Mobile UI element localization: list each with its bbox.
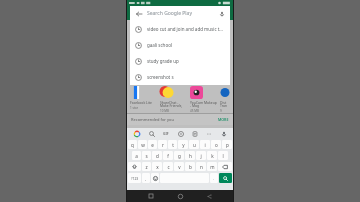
staticText: y [182, 142, 185, 148]
button[interactable]: Search [147, 129, 156, 138]
button[interactable]: ShareChat - Make Friends, [159, 86, 189, 113]
staticText: 1 star [130, 106, 138, 110]
button[interactable]: Shift [128, 162, 141, 171]
button[interactable]: u [189, 140, 199, 149]
button[interactable]: q [128, 140, 137, 149]
button[interactable]: video cut and join and add music to vide… [130, 21, 230, 37]
button[interactable]: o [211, 140, 221, 149]
button[interactable]: k [207, 151, 217, 160]
button[interactable]: d [152, 151, 162, 160]
button[interactable]: y [178, 140, 188, 149]
staticText: e [151, 142, 154, 148]
button[interactable]: g [174, 151, 184, 160]
staticText: u [193, 142, 196, 148]
button[interactable]: x [152, 162, 162, 171]
staticText: i [204, 142, 206, 148]
staticText: ?123 [131, 176, 139, 181]
button[interactable]: s [142, 151, 151, 160]
button[interactable]: Back [134, 9, 143, 18]
button[interactable]: n [196, 162, 206, 171]
staticText: Dist Tran [220, 100, 230, 108]
staticText: GIF [163, 131, 169, 136]
staticText: o [215, 142, 218, 148]
staticText: f [167, 153, 169, 159]
button[interactable]: e [148, 140, 157, 149]
staticText: a [135, 153, 138, 159]
staticText: x [156, 164, 159, 170]
button[interactable]: p [222, 140, 232, 149]
staticText: , [145, 176, 147, 181]
staticText: Search Google Play [147, 10, 217, 17]
button[interactable]: More options [204, 129, 213, 138]
button[interactable]: Voice search [217, 9, 226, 18]
button[interactable]: YouCam Makeup - Mag [189, 86, 219, 113]
button[interactable]: t [168, 140, 177, 149]
button[interactable]: z [142, 162, 151, 171]
button[interactable]: Stickers [176, 129, 185, 138]
staticText: v [178, 164, 181, 170]
button[interactable]: b [185, 162, 195, 171]
staticText: t [172, 142, 174, 148]
button[interactable]: v [174, 162, 184, 171]
button[interactable]: Recommended for you [127, 114, 233, 125]
button[interactable]: w [138, 140, 147, 149]
button[interactable]: Search [219, 173, 232, 183]
button[interactable]: Voice input [219, 129, 228, 138]
button[interactable]: Recents [146, 191, 156, 201]
button[interactable]: a [132, 151, 141, 160]
button[interactable]: m [207, 162, 217, 171]
staticText: j [200, 153, 202, 159]
staticText: ShareChat - Make Friends, [160, 100, 188, 108]
staticText: g [178, 153, 181, 159]
staticText: m [210, 164, 215, 170]
button[interactable]: Emoji [151, 173, 159, 183]
button[interactable]: f [163, 151, 173, 160]
staticText: . [213, 176, 215, 181]
staticText: b [189, 164, 192, 170]
staticText: 9 [220, 109, 222, 113]
button[interactable]: GIF [161, 129, 170, 138]
button[interactable]: l [218, 151, 228, 160]
button[interactable]: . [210, 173, 218, 183]
staticText: c [167, 164, 170, 170]
button[interactable]: h [185, 151, 195, 160]
button[interactable]: , [142, 173, 150, 183]
staticText: 10 MB [160, 109, 169, 113]
button[interactable]: screenshot s [130, 69, 230, 85]
staticText: screenshot s [147, 74, 174, 80]
button[interactable]: Back [130, 6, 230, 21]
staticText: h [189, 153, 192, 159]
button[interactable]: i [200, 140, 210, 149]
staticText: Recommended for you [131, 117, 174, 122]
staticText: d [156, 153, 159, 159]
button[interactable]: j [196, 151, 206, 160]
button[interactable]: ?123 [128, 173, 141, 183]
staticText: r [162, 142, 164, 148]
staticText: n [200, 164, 203, 170]
button[interactable]: gaali school [130, 37, 230, 53]
button[interactable]: Google [132, 129, 141, 138]
staticText: k [211, 153, 214, 159]
staticText: study grade up [147, 58, 179, 64]
button[interactable]: Backspace [218, 162, 232, 171]
staticText: p [226, 142, 229, 148]
staticText: l [222, 153, 224, 159]
staticText: z [145, 164, 148, 170]
button[interactable]: r [158, 140, 167, 149]
staticText: 45 MB [190, 109, 199, 113]
staticText: s [145, 153, 148, 159]
staticText: video cut and join and add music to vide… [147, 26, 225, 32]
button[interactable]: Clipboard [190, 129, 199, 138]
staticText: YouCam Makeup - Mag [190, 100, 218, 108]
staticText: gaali school [147, 42, 173, 48]
button[interactable]: Back [204, 191, 214, 201]
button[interactable]: Home [175, 191, 185, 201]
button[interactable]: Facebook Lite [129, 86, 159, 113]
button[interactable]: study grade up [130, 53, 230, 69]
staticText: Facebook Lite [130, 100, 152, 105]
staticText: w [141, 142, 145, 148]
button[interactable]: c [163, 162, 173, 171]
button[interactable]: Dist Tran [219, 86, 231, 113]
staticText: MORE [218, 117, 229, 122]
